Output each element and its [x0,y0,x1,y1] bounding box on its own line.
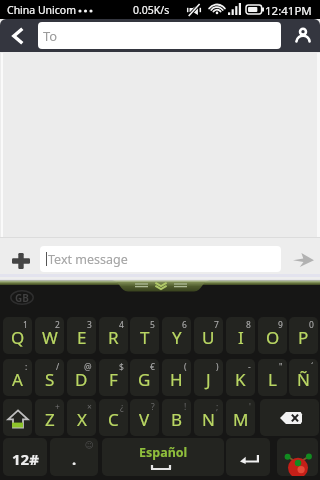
staticText: 0 [309,319,314,331]
button[interactable]: O [258,317,287,354]
staticText: " [279,361,283,373]
staticText: R [108,326,119,349]
button[interactable]: Z [35,399,64,436]
staticText: To [43,27,58,45]
staticText: J [206,368,211,391]
staticText: + [55,401,60,413]
staticText: 8 [246,319,251,331]
staticText: 3 [87,319,92,331]
staticText: K [235,368,246,391]
button[interactable]: B [162,399,191,436]
staticText: 7 [214,319,219,331]
staticText: 1 [23,319,28,331]
button[interactable]: I [226,317,255,354]
button[interactable]: L [258,359,287,396]
staticText: : [25,361,28,373]
staticText: / [56,361,60,373]
button[interactable]: Backspace [260,399,319,436]
button[interactable]: Contacts [285,19,320,52]
staticText: $ [119,361,124,373]
button[interactable]: Español [102,438,224,476]
staticText: ¿ [120,401,124,413]
button[interactable]: X [67,399,96,436]
button[interactable]: H [162,359,191,396]
button[interactable]: Q [3,317,32,354]
button[interactable]: D [67,359,96,396]
staticText: V [139,408,150,431]
button[interactable]: Y [162,317,191,354]
staticText: 4 [119,319,124,331]
staticText: M [233,408,249,431]
button[interactable]: Keyboard settings [277,438,318,476]
button[interactable]: K [226,359,255,396]
staticText: 6 [182,319,187,331]
staticText: ´ [311,361,314,373]
button[interactable]: P [289,317,318,354]
staticText: U [202,326,215,349]
button[interactable]: G [130,359,159,396]
button[interactable]: Add attachment [0,237,40,277]
button[interactable]: To [38,22,281,49]
staticText: L [268,368,277,391]
staticText: 12# [12,449,39,469]
staticText: 2 [55,319,60,331]
staticText: Y [172,326,182,349]
staticText: G [138,368,151,391]
button[interactable]: S [35,359,64,396]
button[interactable]: C [99,399,128,436]
staticText: . [72,449,77,469]
staticText: N [202,408,215,431]
staticText: × [87,401,92,413]
staticText: ! [184,401,187,413]
staticText: T [140,326,150,349]
staticText: ( [184,361,187,373]
button[interactable]: Enter [226,438,270,476]
staticText: Ñ [297,368,310,391]
button[interactable]: E [67,317,96,354]
button[interactable]: J [194,359,223,396]
staticText: 0.05K/s [133,3,170,17]
staticText: E [77,326,87,349]
button[interactable]: F [99,359,128,396]
button[interactable]: M [226,399,255,436]
button[interactable]: Send [284,241,318,277]
staticText: Q [11,326,25,349]
button[interactable]: T [130,317,159,354]
button[interactable]: Back [0,19,35,52]
button[interactable]: . [50,438,98,476]
staticText: A [12,368,23,391]
button[interactable]: Text message [40,246,281,272]
button[interactable]: U [194,317,223,354]
staticText: O [266,326,280,349]
button[interactable]: R [99,317,128,354]
button[interactable]: N [194,399,223,436]
staticText: W [42,326,58,349]
button[interactable]: W [35,317,64,354]
staticText: C [108,408,119,431]
button[interactable]: Ñ [289,359,318,396]
staticText: H [170,368,183,391]
staticText: 9 [278,319,283,331]
staticText: 5 [150,319,155,331]
staticText: F [109,368,118,391]
staticText: ☺ [85,440,94,450]
button[interactable]: A [3,359,32,396]
staticText: ? [151,401,155,413]
staticText: GB [15,291,29,305]
button[interactable]: 12# [3,438,47,476]
staticText: X [77,408,87,431]
staticText: ; [216,401,219,413]
button[interactable]: Shift [3,399,32,436]
staticText: @ [84,361,92,373]
staticText: P [298,326,309,349]
staticText: D [75,368,88,391]
staticText: ) [216,361,219,373]
staticText: Text message [48,251,128,268]
staticText: Español [139,444,188,461]
button[interactable]: V [130,399,159,436]
staticText: € [150,361,155,373]
staticText: B [171,408,183,431]
staticText: I [238,326,244,349]
staticText: 12:41PM [265,3,312,19]
staticText: Z [45,408,55,431]
